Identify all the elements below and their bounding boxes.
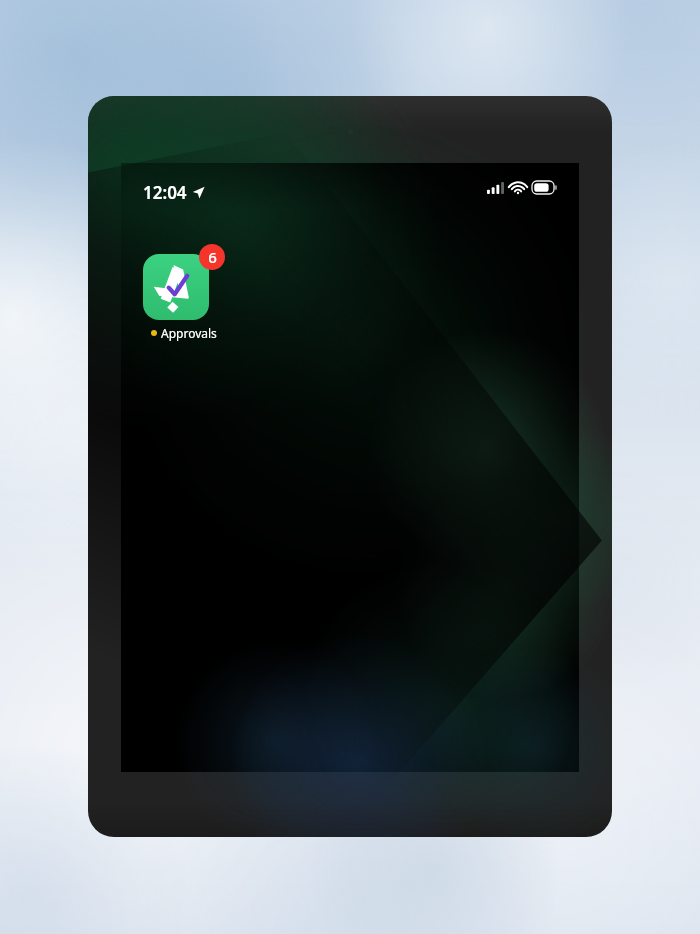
staticText: 6 (208, 247, 217, 267)
staticText: 12:04 (143, 181, 187, 204)
staticText: Approvals (161, 325, 217, 341)
button[interactable]: 6 (143, 244, 225, 341)
